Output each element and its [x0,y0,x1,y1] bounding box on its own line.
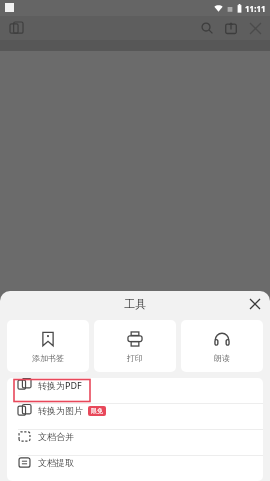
staticText: 转换为图片 [38,405,83,416]
staticText: 限免 [91,407,103,415]
staticText: 11:11 [245,3,266,14]
staticText: 添加书签 [32,353,64,363]
staticText: 文档提取 [38,457,74,468]
button[interactable]: Search [195,16,219,40]
button[interactable]: 朗读 [181,320,263,372]
staticText: 打印 [127,353,143,363]
button[interactable]: 添加书签 [7,320,89,372]
button[interactable]: 文档提取 [7,456,263,481]
button[interactable]: Close sheet [244,293,266,315]
staticText: 工具 [124,297,146,311]
button[interactable]: 文档合并 [7,430,263,455]
button[interactable]: 转换为PDF [7,378,263,403]
button[interactable]: Documents [4,16,28,40]
staticText: 文档合并 [38,431,74,442]
staticText: 转换为PDF [38,379,82,391]
staticText: 朗读 [214,353,230,363]
button[interactable]: 打印 [94,320,176,372]
button[interactable]: Close [243,16,267,40]
button[interactable]: Share [219,16,243,40]
button[interactable]: 转换为图片 [7,404,263,429]
